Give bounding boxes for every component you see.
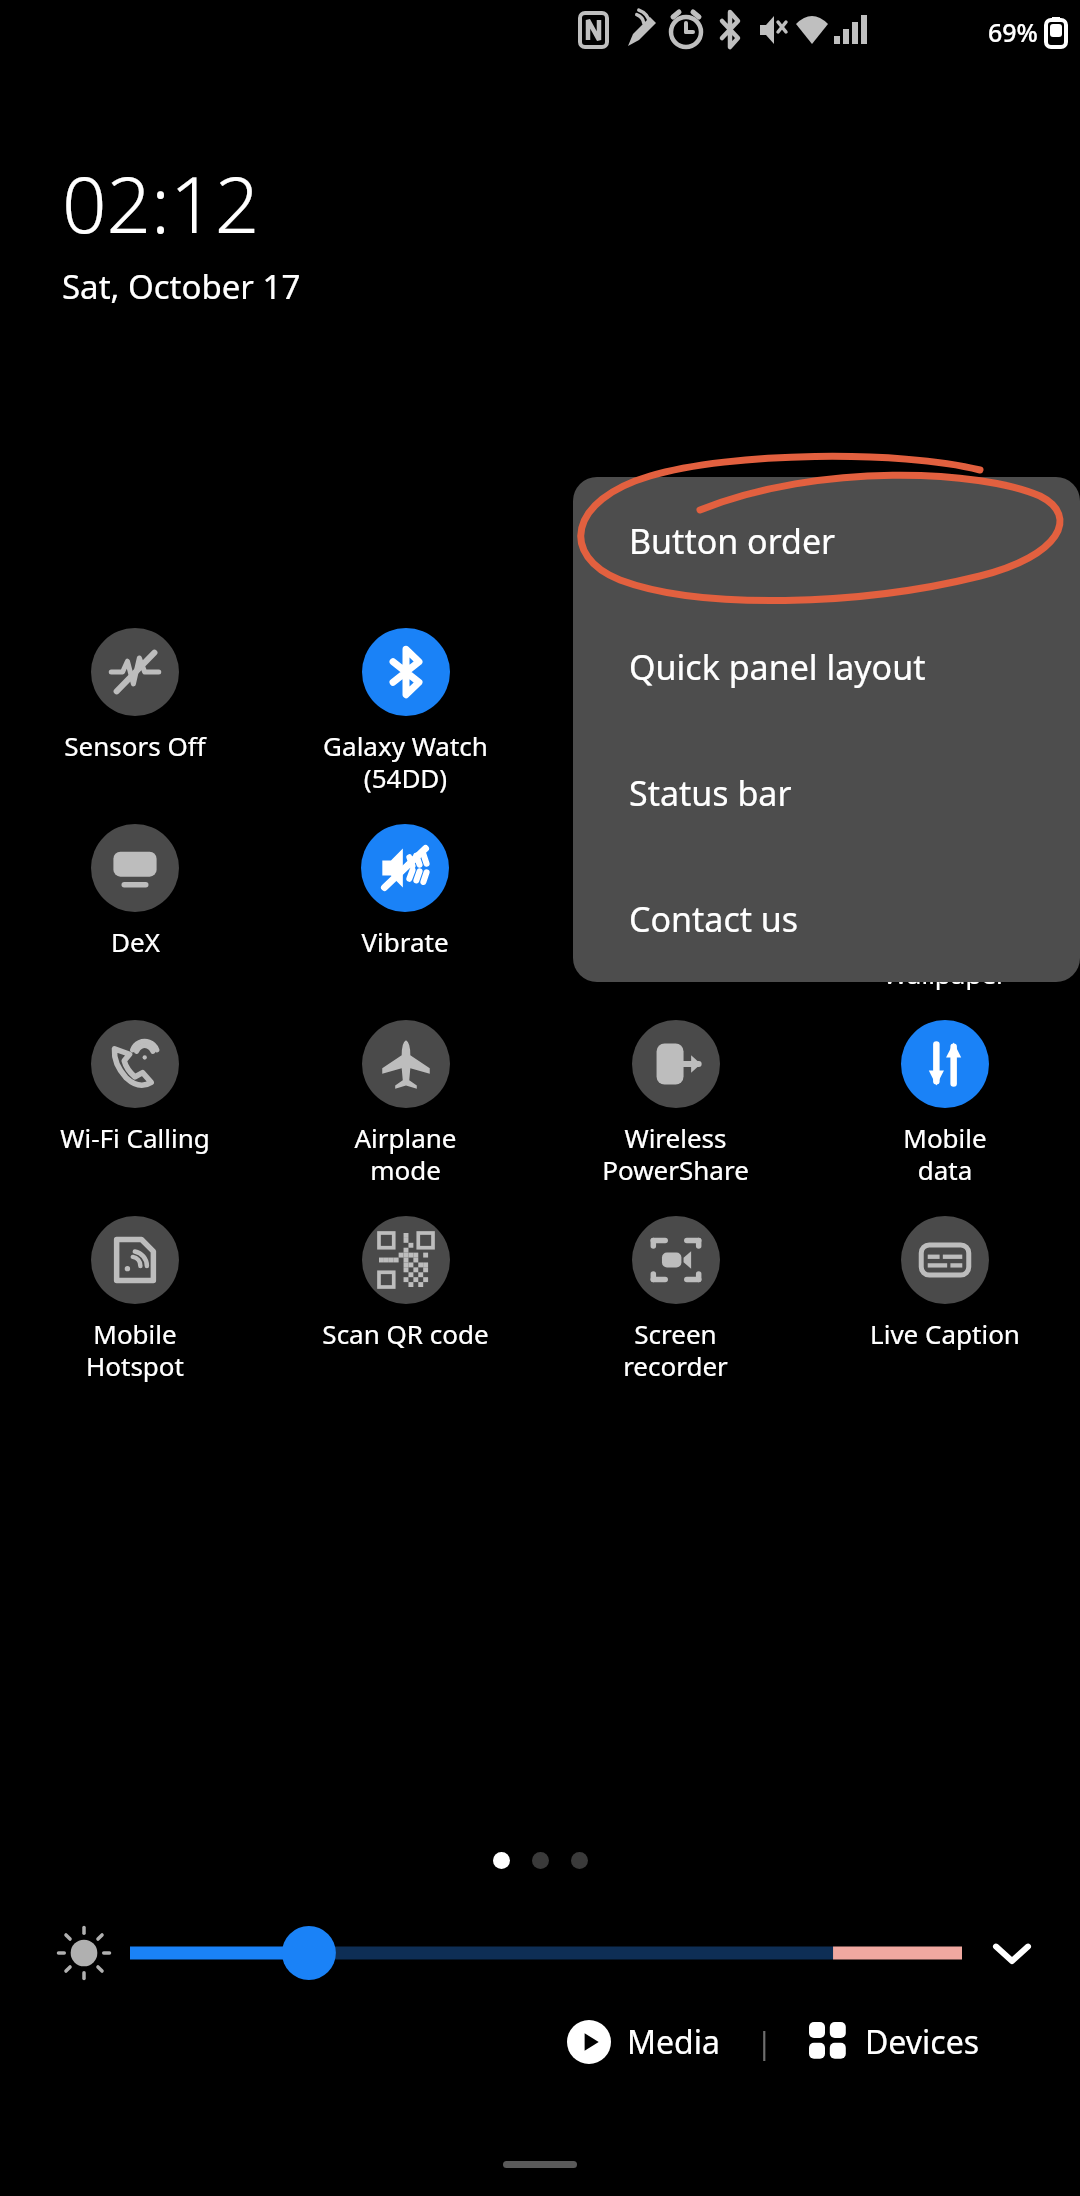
staticText: Wireless PowerShare	[602, 1120, 749, 1188]
button[interactable]: Flashlight	[612, 824, 739, 959]
staticText: Media	[627, 2020, 720, 2064]
button[interactable]: Galaxy Watch (54DD)	[319, 628, 492, 796]
staticText: Devices	[865, 2020, 980, 2064]
button[interactable]: Wi-Fi Calling	[56, 1020, 214, 1155]
button[interactable]: Sensors Off	[60, 628, 210, 763]
staticText: Galaxy Watch (54DD)	[323, 728, 488, 796]
staticText: DeX	[111, 924, 160, 959]
button[interactable]: DeX	[87, 824, 183, 959]
button[interactable]: Devices	[799, 2010, 990, 2074]
button[interactable]: Button order	[573, 477, 1080, 604]
button[interactable]: Next Wallpaper	[879, 824, 1011, 992]
button[interactable]: Mobile data	[897, 1020, 993, 1188]
button[interactable]: Status bar	[573, 730, 1080, 856]
staticText: Live Caption	[870, 1316, 1020, 1351]
staticText: |	[756, 2022, 773, 2063]
button[interactable]: Mobile Hotspot	[82, 1216, 188, 1384]
button[interactable]: Airplane mode	[350, 1020, 461, 1188]
staticText: Mobile data	[903, 1120, 987, 1188]
staticText: Contact us	[629, 896, 799, 942]
staticText: Flashlight	[616, 924, 735, 959]
button[interactable]: Vibrate	[357, 824, 453, 959]
button[interactable]: Expand brightness settings	[978, 1919, 1046, 1987]
staticText: Vibrate	[361, 924, 449, 959]
staticText: 69%	[988, 15, 1038, 49]
button[interactable]: Live Caption	[866, 1216, 1024, 1351]
button[interactable]: Scan QR code	[318, 1216, 493, 1351]
staticText: Airplane mode	[354, 1120, 457, 1188]
staticText: Status bar	[629, 770, 792, 816]
staticText: Quick panel layout	[629, 644, 926, 690]
staticText: Wi-Fi Calling	[60, 1120, 210, 1155]
staticText: Sensors Off	[64, 728, 206, 763]
staticText: Mobile Hotspot	[86, 1316, 184, 1384]
button[interactable]: Auto brightness	[46, 1915, 122, 1991]
staticText: Screen recorder	[623, 1316, 728, 1384]
button[interactable]: Wireless PowerShare	[598, 1020, 753, 1188]
staticText: Scan QR code	[322, 1316, 489, 1351]
button[interactable]	[130, 1931, 962, 1975]
staticText: Next Wallpaper	[883, 924, 1007, 992]
button[interactable]: Media	[557, 2010, 730, 2074]
staticText: Button order	[629, 518, 836, 564]
button[interactable]: Screen recorder	[619, 1216, 732, 1384]
staticText: Sat, October 17	[62, 264, 301, 309]
button[interactable]: Contact us	[573, 856, 1080, 982]
button[interactable]: Quick panel layout	[573, 604, 1080, 730]
staticText: 02:12	[62, 150, 260, 256]
